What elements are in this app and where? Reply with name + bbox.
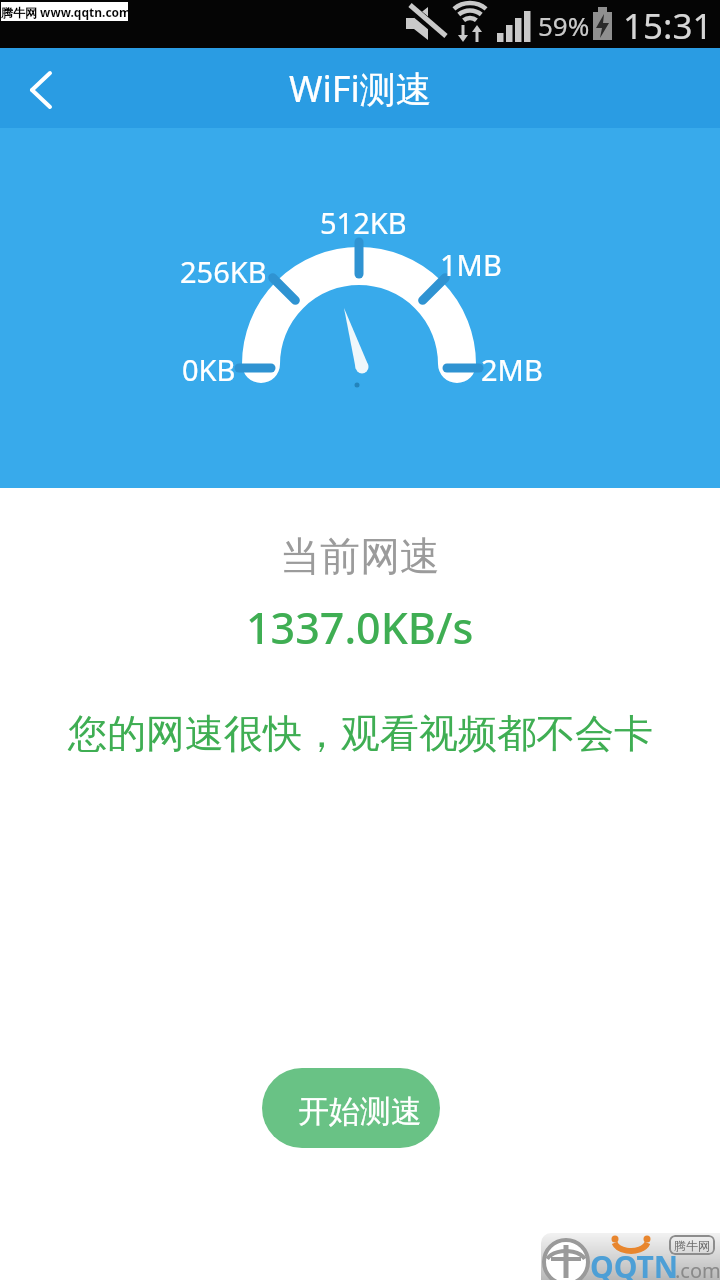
staticText: 开始测速 [298,1092,422,1131]
staticText: 1MB [440,245,502,284]
button[interactable]: 开始测速 [262,1068,440,1148]
button[interactable] [8,56,72,120]
staticText: 腾牛网 www.qqtn.com [1,4,128,20]
staticText: 512KB [320,203,407,242]
staticText: 腾牛网 [674,1238,710,1253]
staticText: QQTN [590,1246,679,1280]
staticText: 0KB [182,350,236,389]
staticText: 2MB [481,350,543,389]
staticText: 59% [538,8,590,43]
staticText: WiFi测速 [289,64,432,113]
staticText: 256KB [180,252,267,291]
staticText: .com [675,1257,720,1280]
staticText: 1337.0KB/s [246,598,474,657]
staticText: 15:31 [623,2,713,50]
staticText: 您的网速很快，观看视频都不会卡 [68,709,653,758]
staticText: 当前网速 [280,531,440,581]
